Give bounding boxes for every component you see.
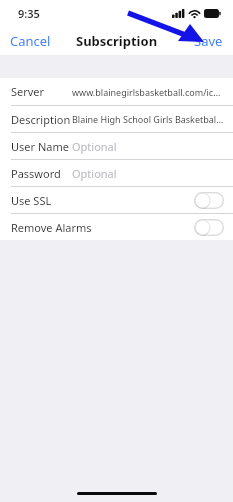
button[interactable]: Save — [184, 28, 233, 54]
staticText: Password — [11, 166, 72, 181]
staticText: Optional — [72, 166, 117, 181]
staticText: 9:35 — [18, 6, 40, 21]
button[interactable]: Use SSL — [0, 186, 233, 213]
button[interactable]: Password — [0, 159, 233, 186]
staticText: Remove Alarms — [11, 220, 92, 235]
staticText: Use SSL — [11, 193, 52, 208]
button[interactable]: Remove Alarms — [0, 213, 233, 240]
staticText: Save — [194, 32, 223, 50]
staticText: Optional — [72, 139, 117, 154]
button[interactable]: Toggle — [194, 192, 224, 209]
staticText: Blaine High School Girls Basketball... — [72, 113, 225, 125]
staticText: Description — [11, 112, 72, 127]
button[interactable]: Toggle — [194, 219, 224, 236]
staticText: www.blainegirlsbasketball.com/ical_... — [72, 86, 225, 98]
button[interactable]: Cancel — [0, 28, 61, 54]
button[interactable]: User Name — [0, 132, 233, 159]
staticText: Subscription — [76, 32, 158, 50]
staticText: Server — [11, 84, 72, 99]
button[interactable]: Description — [0, 105, 233, 132]
button[interactable]: Server — [0, 78, 233, 105]
staticText: User Name — [11, 139, 72, 154]
staticText: Cancel — [10, 32, 51, 50]
